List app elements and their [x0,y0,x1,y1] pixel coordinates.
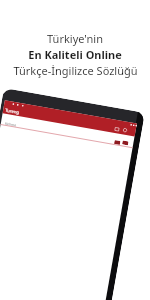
staticText: Türkçe-İngilizce Sözlüğü [13,63,138,78]
staticText: Tureng [5,108,20,116]
button[interactable]: Settings [121,126,129,134]
button[interactable]: Search [122,140,129,145]
staticText: En Kaliteli Online [28,47,122,62]
button[interactable]: History [113,126,121,134]
button[interactable]: Swap languages [114,140,121,145]
staticText: Kelime [4,121,17,128]
staticText: Türkiye'nin [47,31,103,46]
